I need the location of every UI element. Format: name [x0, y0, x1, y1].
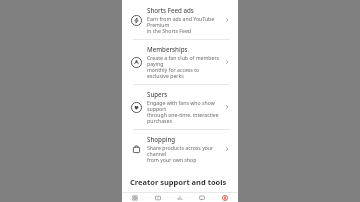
- button[interactable]: Memberships: [126, 40, 234, 84]
- staticText: Supers: [147, 90, 168, 98]
- staticText: Shopping: [147, 135, 176, 143]
- staticText: Memberships: [147, 45, 188, 53]
- button[interactable]: Comments: [193, 193, 211, 202]
- button[interactable]: Shopping: [126, 130, 234, 168]
- button[interactable]: Supers: [126, 85, 234, 129]
- staticText: Shorts Feed ads: [147, 6, 194, 14]
- button[interactable]: Content: [149, 193, 167, 202]
- button[interactable]: Earn: [216, 193, 234, 202]
- button[interactable]: Dashboard: [126, 193, 144, 202]
- button[interactable]: Analytics: [171, 193, 189, 202]
- staticText: Engage with fans who show support throug…: [147, 99, 221, 124]
- staticText: Earn from ads and YouTube Premium in the…: [147, 15, 221, 34]
- staticText: Create a fan club of members paying mont…: [147, 54, 221, 79]
- staticText: Creator support and tools: [130, 177, 227, 187]
- button[interactable]: Shorts Feed ads: [126, 1, 234, 39]
- staticText: Share products across your channel from …: [147, 144, 221, 163]
